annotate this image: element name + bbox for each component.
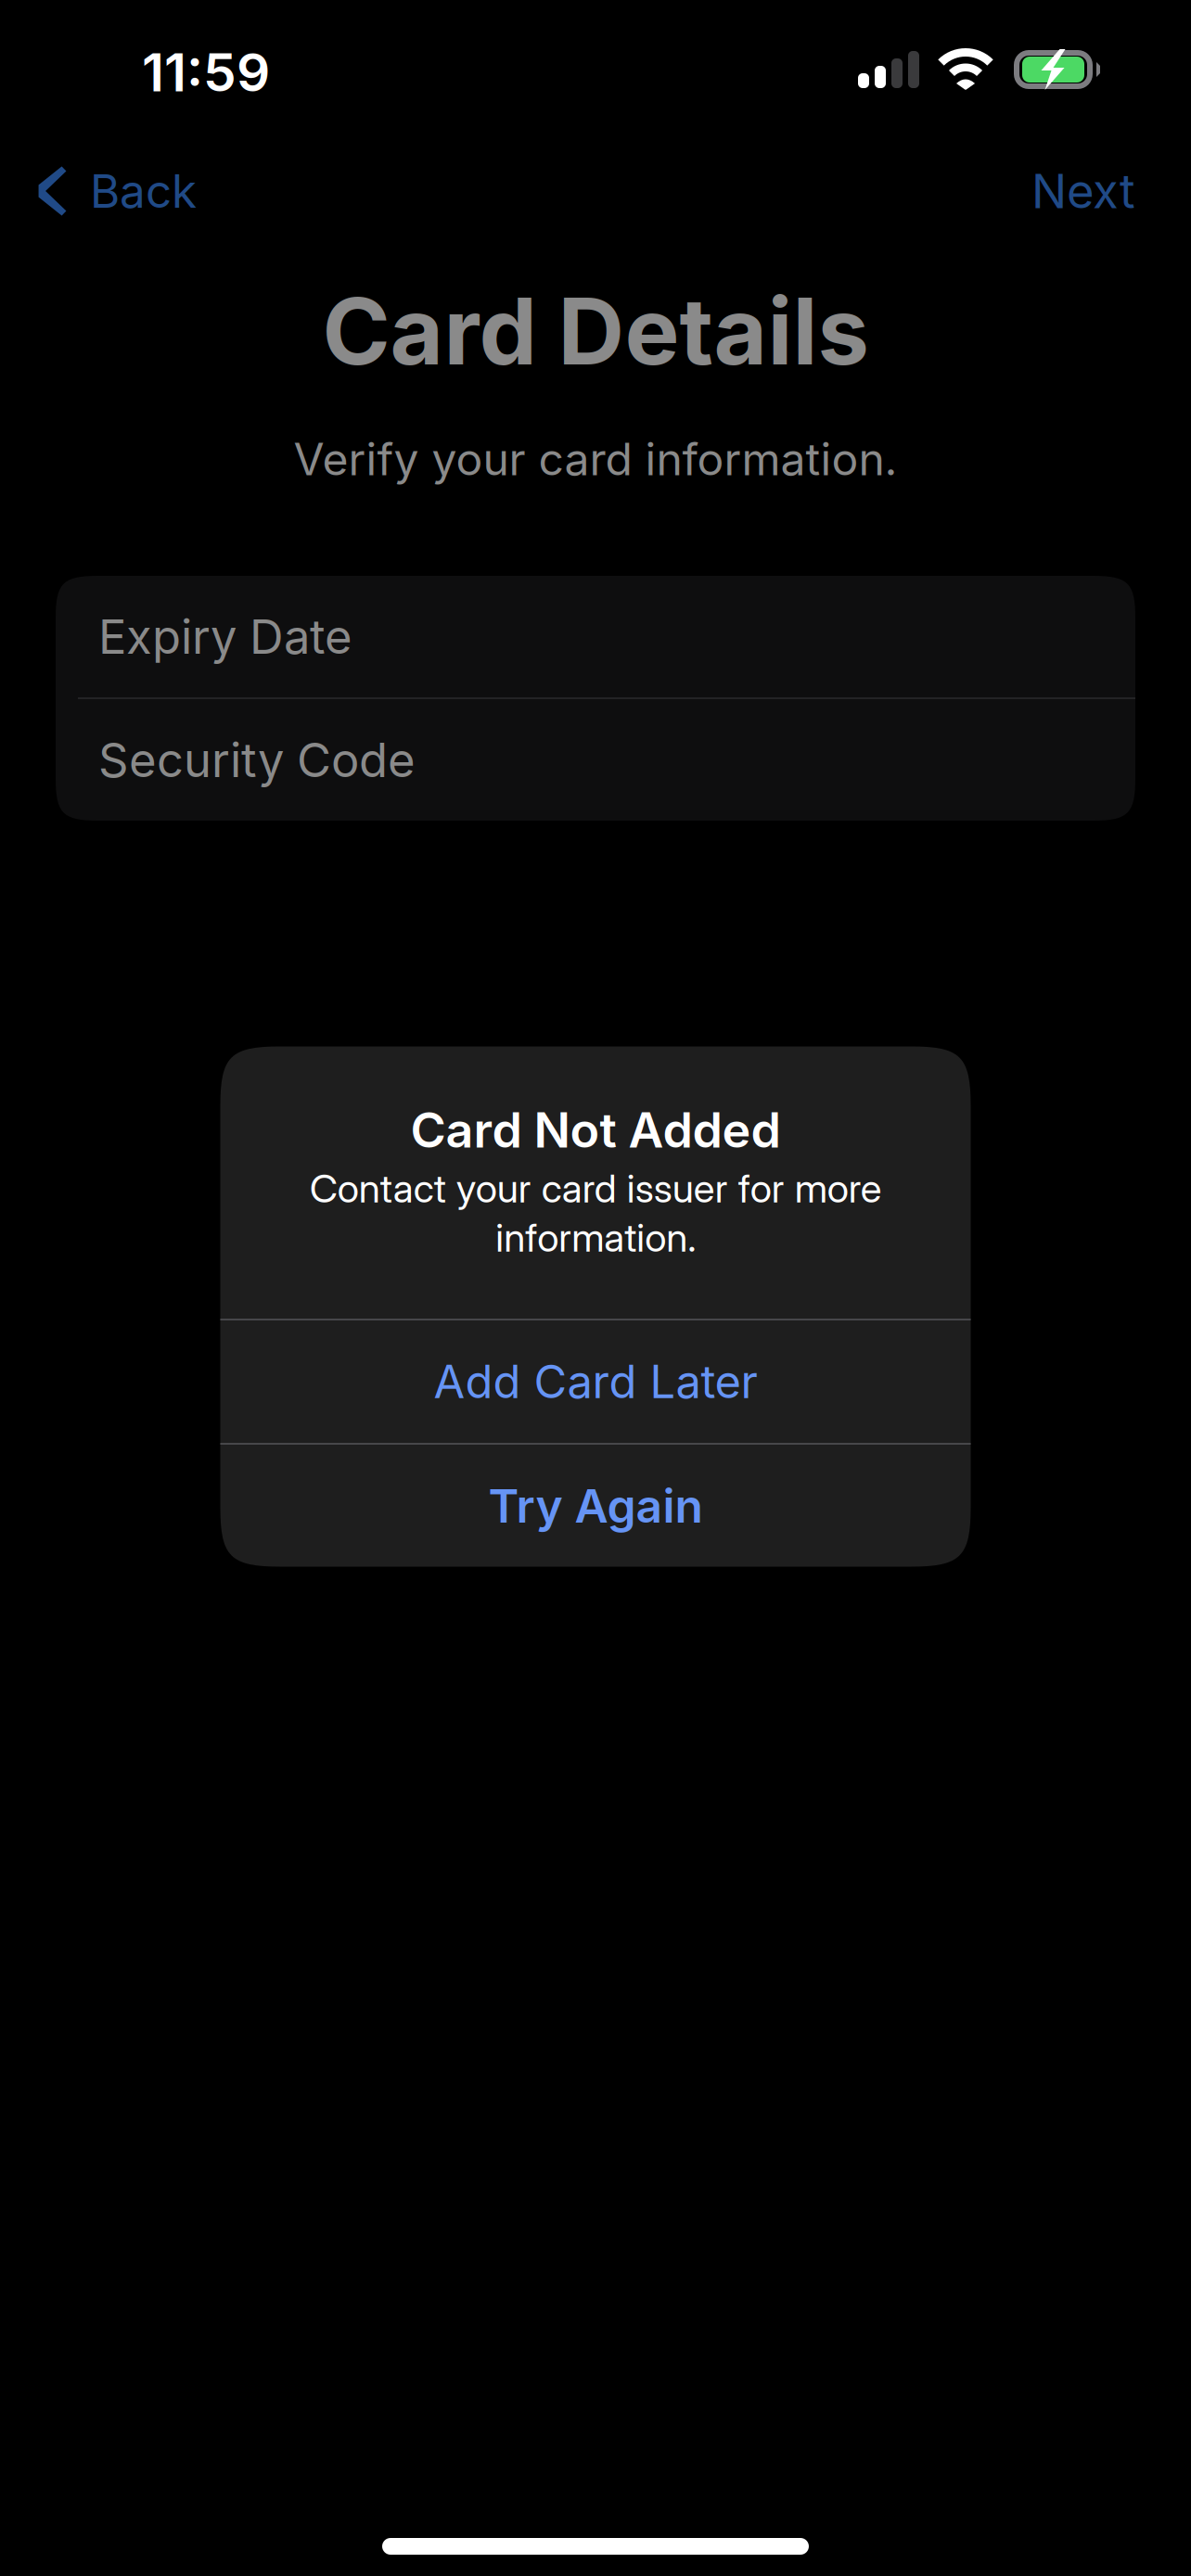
button[interactable]: Next bbox=[1004, 142, 1163, 240]
staticText: Add Card Later bbox=[434, 1354, 757, 1409]
button[interactable]: Back bbox=[15, 143, 219, 239]
staticText: Contact your card issuer for more inform… bbox=[309, 1165, 882, 1261]
button[interactable]: Try Again bbox=[220, 1445, 971, 1567]
staticText: Try Again bbox=[488, 1478, 703, 1534]
staticText: Expiry Date bbox=[98, 608, 352, 665]
button[interactable]: Expiry Date bbox=[56, 576, 1135, 697]
staticText: 11:59 bbox=[142, 41, 270, 104]
staticText: Card Not Added bbox=[410, 1101, 781, 1159]
button[interactable]: Security Code bbox=[56, 699, 1135, 821]
staticText: Verify your card information. bbox=[294, 432, 897, 486]
staticText: Back bbox=[90, 163, 197, 219]
button[interactable]: Add Card Later bbox=[220, 1320, 971, 1443]
staticText: Card Details bbox=[322, 275, 869, 387]
staticText: Security Code bbox=[98, 731, 416, 788]
staticText: Next bbox=[1031, 163, 1135, 219]
